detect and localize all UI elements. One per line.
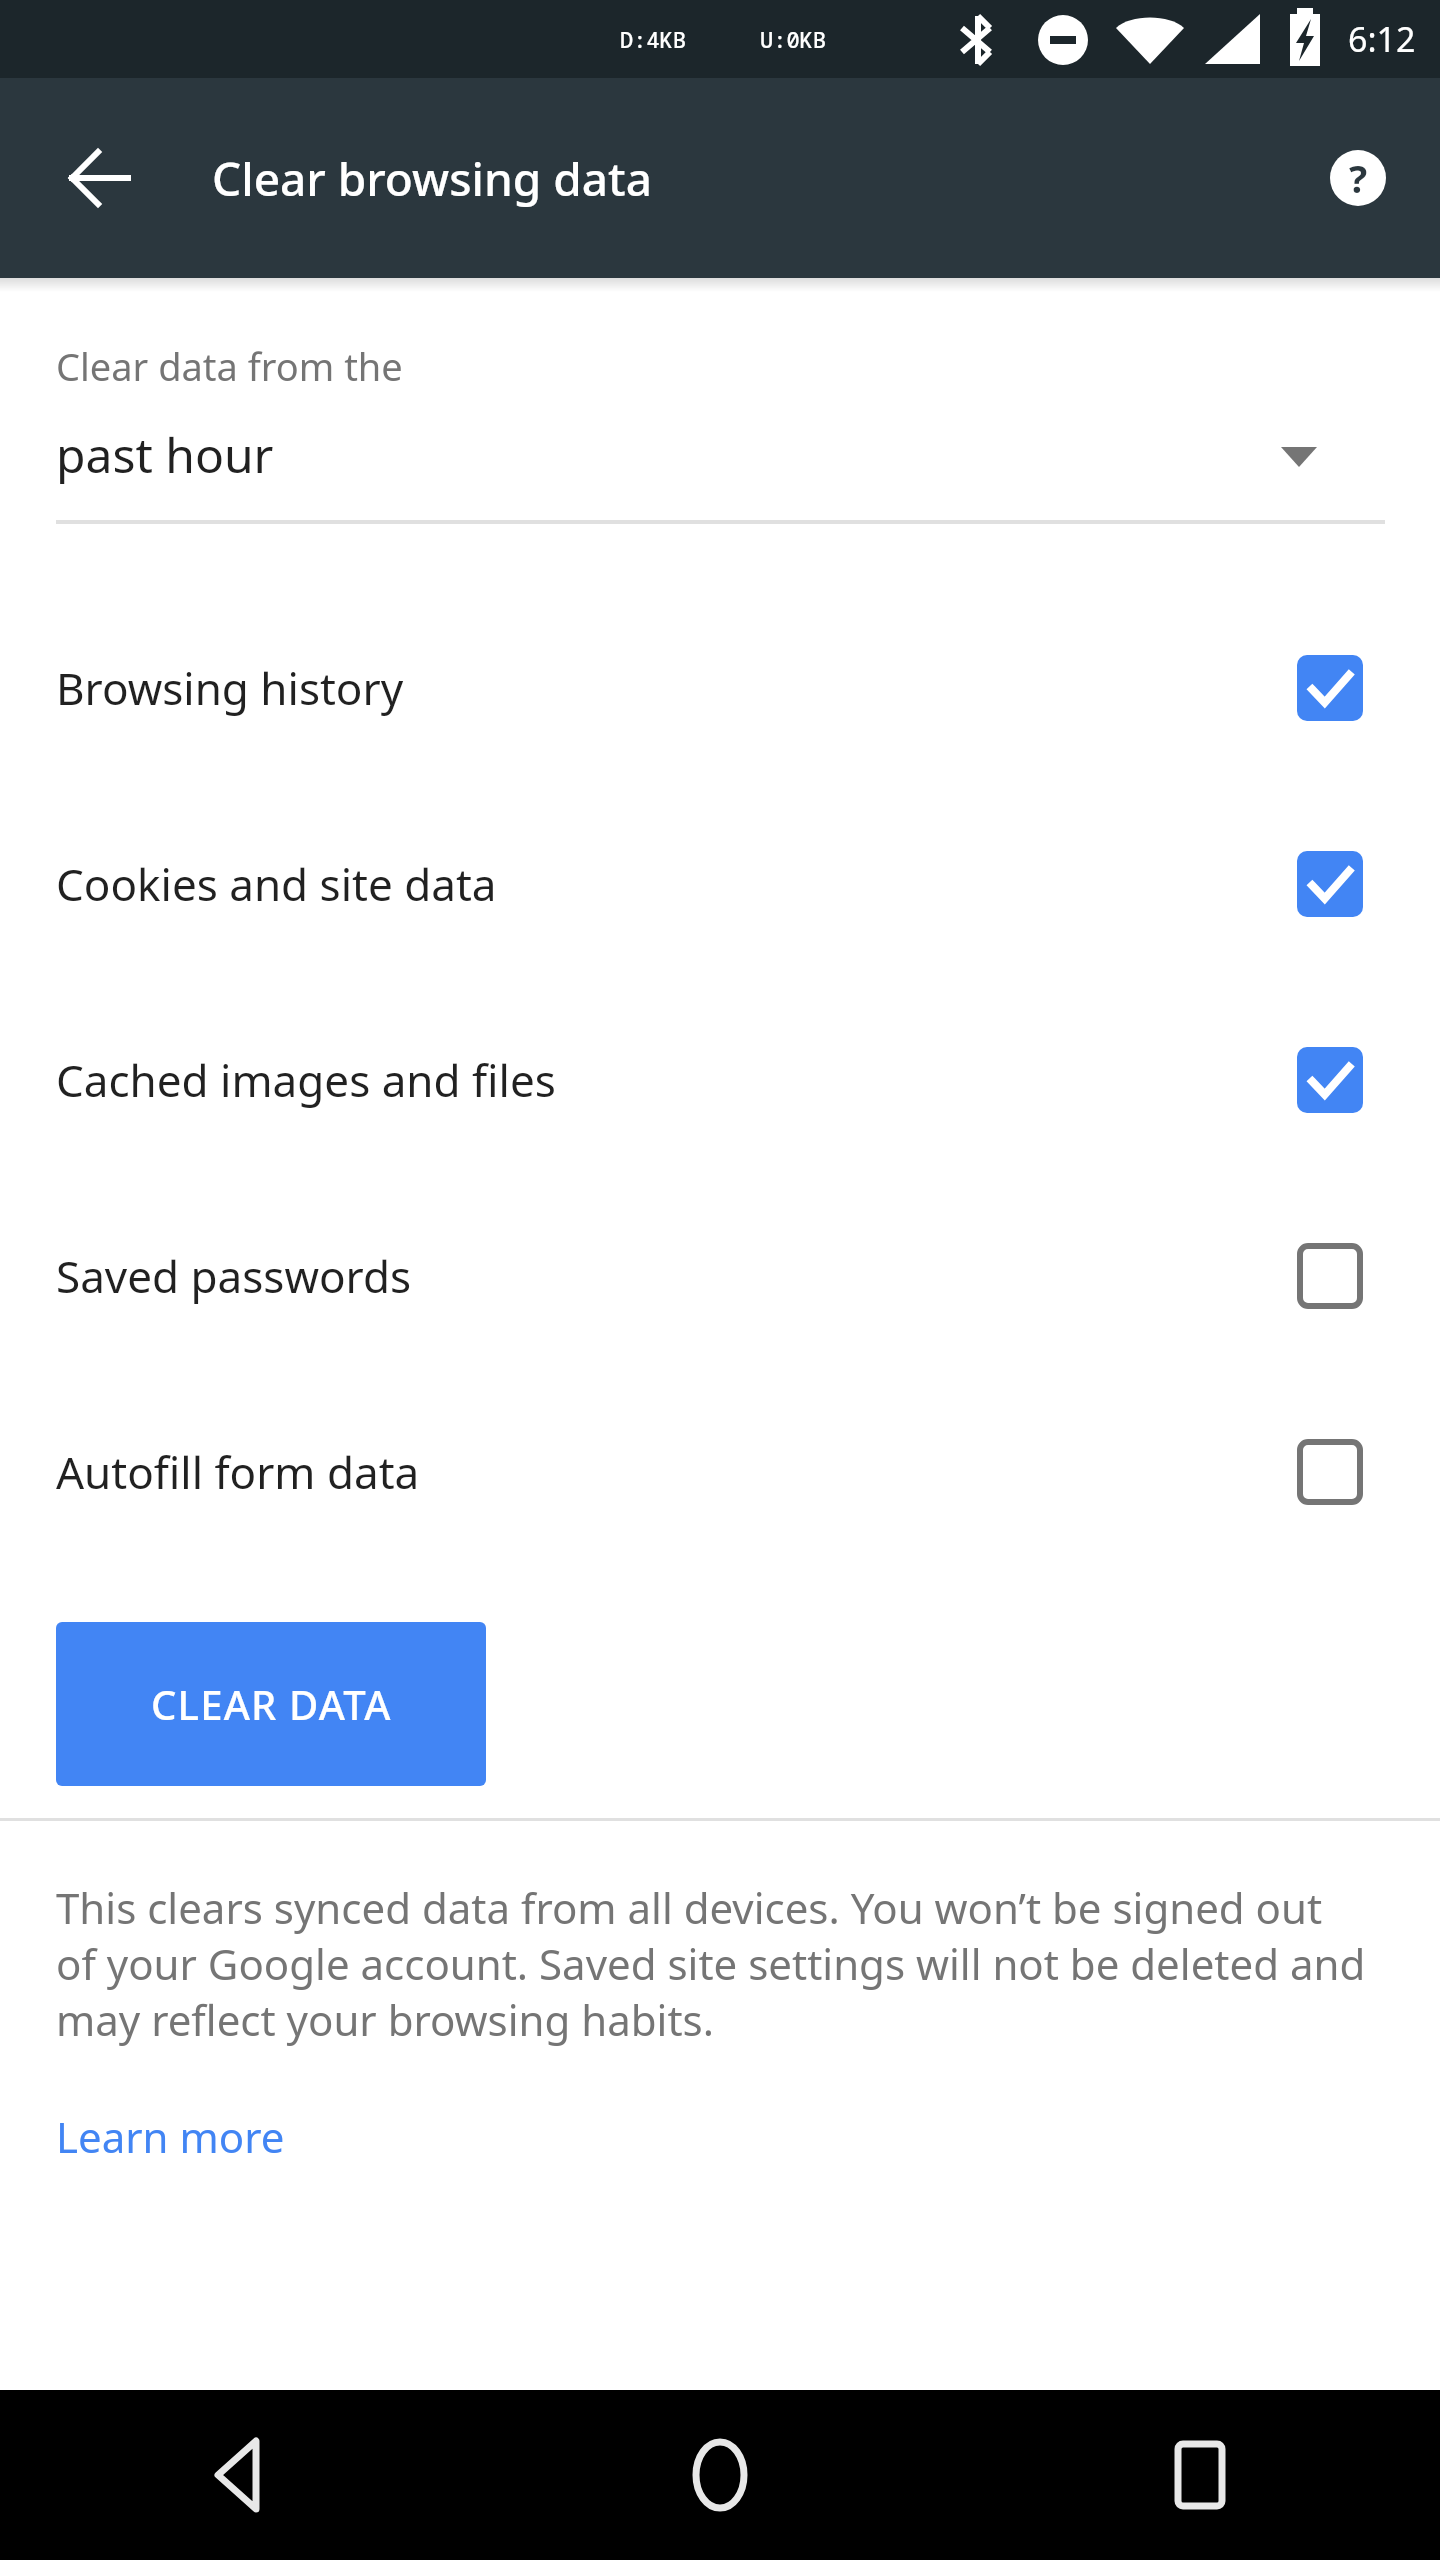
button[interactable]: Cookies and site data: [0, 786, 1440, 982]
staticText: ?: [1349, 152, 1368, 204]
button[interactable]: Saved passwords: [0, 1178, 1440, 1374]
button[interactable]: CLEAR DATA: [56, 1622, 486, 1786]
button[interactable]: Cached images and files: [0, 982, 1440, 1178]
button[interactable]: Home: [480, 2390, 960, 2560]
staticText: 6:12: [1348, 16, 1416, 62]
staticText: Browsing history: [56, 658, 1297, 718]
staticText: U:0KB: [760, 24, 827, 54]
staticText: Saved passwords: [56, 1246, 1297, 1306]
staticText: Learn more: [56, 2108, 285, 2165]
staticText: D:4KB: [620, 24, 687, 54]
staticText: Cached images and files: [56, 1050, 1297, 1110]
button[interactable]: Autofill form data: [0, 1374, 1440, 1570]
button[interactable]: Back: [44, 122, 156, 234]
button[interactable]: Browsing history: [0, 590, 1440, 786]
staticText: CLEAR DATA: [151, 1677, 392, 1731]
staticText: Cookies and site data: [56, 854, 1297, 914]
button[interactable]: Clear data from the: [0, 340, 1440, 528]
button[interactable]: Help: [1302, 122, 1414, 234]
staticText: past hour: [56, 422, 274, 487]
button[interactable]: Recent apps: [960, 2390, 1440, 2560]
staticText: Clear browsing data: [212, 147, 652, 210]
staticText: This clears synced data from all devices…: [56, 1879, 1370, 2048]
button[interactable]: Back: [0, 2390, 480, 2560]
staticText: Clear data from the: [56, 340, 403, 392]
staticText: Autofill form data: [56, 1442, 1297, 1502]
button[interactable]: Learn more: [56, 2108, 285, 2165]
